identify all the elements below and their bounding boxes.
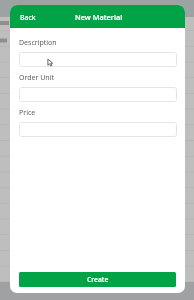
staticText: Back bbox=[20, 13, 36, 23]
staticText: Order Unit bbox=[19, 73, 54, 83]
button[interactable]: Price bbox=[19, 122, 177, 137]
button[interactable]: Order Unit bbox=[19, 87, 177, 102]
staticText: Description bbox=[19, 38, 57, 48]
button[interactable]: Create bbox=[19, 272, 176, 287]
staticText: New Material bbox=[75, 12, 123, 22]
button[interactable]: Description bbox=[19, 52, 177, 67]
staticText: Price bbox=[19, 108, 36, 118]
button[interactable]: Back bbox=[10, 9, 40, 25]
staticText: Create bbox=[87, 275, 109, 284]
